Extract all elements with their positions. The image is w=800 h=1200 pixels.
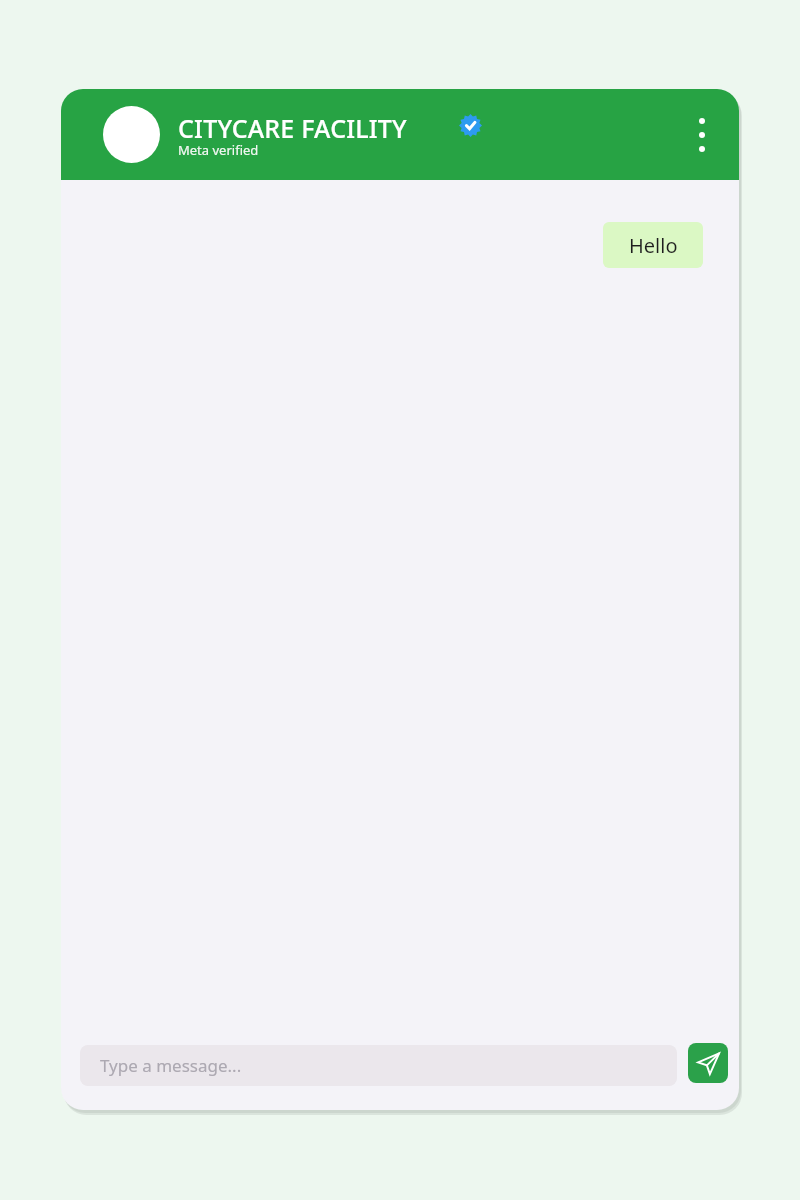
staticText: Type a message... [100,1054,242,1077]
staticText: Meta verified [178,141,259,159]
button[interactable]: Profile photo [61,89,739,180]
staticText: Hello [629,232,678,259]
button[interactable]: More options [681,109,723,161]
button[interactable]: Type a message... [80,1045,677,1086]
button[interactable]: Send [688,1043,728,1083]
button[interactable]: Hello [603,222,703,268]
button[interactable]: Profile photo [103,106,160,163]
other: Verified [459,114,482,137]
staticText: CITYCARE FACILITY [178,111,407,145]
